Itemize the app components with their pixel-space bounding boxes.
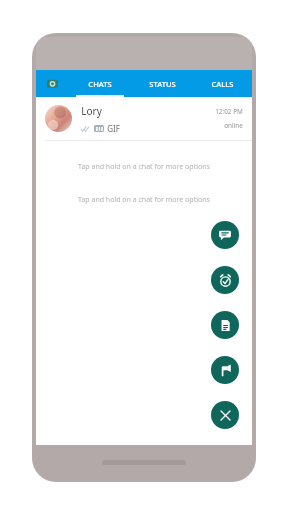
staticText: 12:02 PM bbox=[215, 107, 243, 116]
staticText: STATUS bbox=[149, 79, 176, 89]
button[interactable]: Close bbox=[211, 401, 239, 429]
button[interactable]: Camera bbox=[36, 70, 69, 97]
staticText: GIF bbox=[107, 123, 120, 134]
staticText: Tap and hold on a chat for more options bbox=[78, 162, 210, 172]
button[interactable]: Document bbox=[211, 311, 239, 339]
button[interactable]: CALLS bbox=[193, 70, 252, 97]
staticText: Tap and hold on a chat for more options bbox=[78, 195, 210, 205]
button[interactable]: STATUS bbox=[131, 70, 193, 97]
staticText: CHATS bbox=[88, 79, 112, 89]
button[interactable]: Lory bbox=[36, 97, 252, 141]
staticText: Lory bbox=[81, 104, 102, 118]
staticText: online bbox=[224, 121, 243, 130]
button[interactable]: New chat bbox=[211, 221, 239, 249]
button[interactable]: Broadcast bbox=[211, 356, 239, 384]
button[interactable]: CHATS bbox=[69, 70, 131, 97]
button[interactable]: Reminder bbox=[211, 266, 239, 294]
staticText: CALLS bbox=[211, 79, 234, 89]
